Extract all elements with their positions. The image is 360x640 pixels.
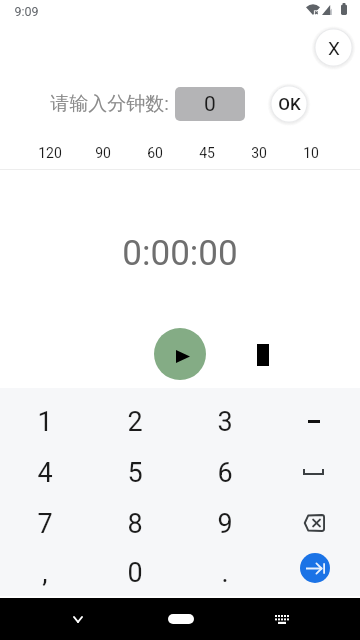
button[interactable]: 0 xyxy=(90,549,180,596)
staticText: 0:00:00 xyxy=(122,233,238,274)
staticText: 6 xyxy=(217,457,233,489)
staticText: , xyxy=(42,557,48,589)
staticText: X xyxy=(328,37,340,59)
staticText: 0 xyxy=(204,92,216,117)
button[interactable]: 9 xyxy=(180,498,270,549)
staticText: 5 xyxy=(127,457,143,489)
button[interactable]: Space xyxy=(270,447,360,498)
staticText: 45 xyxy=(199,145,215,161)
button[interactable]: 6 xyxy=(180,447,270,498)
button[interactable]: 1 xyxy=(0,396,90,447)
staticText: 3 xyxy=(217,406,233,438)
button[interactable]: 60 xyxy=(129,141,181,164)
staticText: 请输入分钟数: xyxy=(50,92,169,116)
button[interactable]: 5 xyxy=(90,447,180,498)
button[interactable]: 7 xyxy=(0,498,90,549)
button[interactable]: 2 xyxy=(90,396,180,447)
staticText: 8 xyxy=(127,508,143,540)
staticText: 10 xyxy=(303,145,319,161)
button[interactable]: Backspace xyxy=(270,498,360,549)
button[interactable]: Close xyxy=(313,27,354,68)
button[interactable]: Home xyxy=(150,603,212,635)
staticText: 60 xyxy=(147,145,163,161)
button[interactable]: . xyxy=(180,549,270,596)
staticText: 0 xyxy=(127,557,143,589)
staticText: 2 xyxy=(127,406,143,438)
button[interactable]: 0 xyxy=(175,87,245,121)
staticText: 1 xyxy=(37,406,53,438)
button[interactable]: 4 xyxy=(0,447,90,498)
button[interactable]: 45 xyxy=(181,141,233,164)
staticText: 9 xyxy=(217,508,233,540)
button[interactable]: Back xyxy=(62,603,94,635)
button[interactable]: 120 xyxy=(23,141,76,164)
button[interactable]: 3 xyxy=(180,396,270,447)
button[interactable]: OK xyxy=(269,84,309,124)
staticText: 4 xyxy=(37,457,53,489)
staticText: 30 xyxy=(251,145,267,161)
button[interactable]: Enter xyxy=(270,549,360,596)
button[interactable]: , xyxy=(0,549,90,596)
button[interactable]: 90 xyxy=(76,141,129,164)
staticText: 7 xyxy=(37,508,53,540)
button[interactable]: 10 xyxy=(285,141,337,164)
button[interactable]: Start xyxy=(154,328,206,380)
button[interactable]: 30 xyxy=(233,141,285,164)
button[interactable]: Minus xyxy=(270,396,360,447)
staticText: 90 xyxy=(95,145,111,161)
staticText: 120 xyxy=(38,145,62,161)
button[interactable]: Stop xyxy=(246,338,279,371)
staticText: 9:09 xyxy=(14,4,39,19)
staticText: . xyxy=(221,557,229,589)
button[interactable]: 8 xyxy=(90,498,180,549)
button[interactable]: Switch keyboard xyxy=(266,603,298,635)
staticText: OK xyxy=(278,94,301,114)
